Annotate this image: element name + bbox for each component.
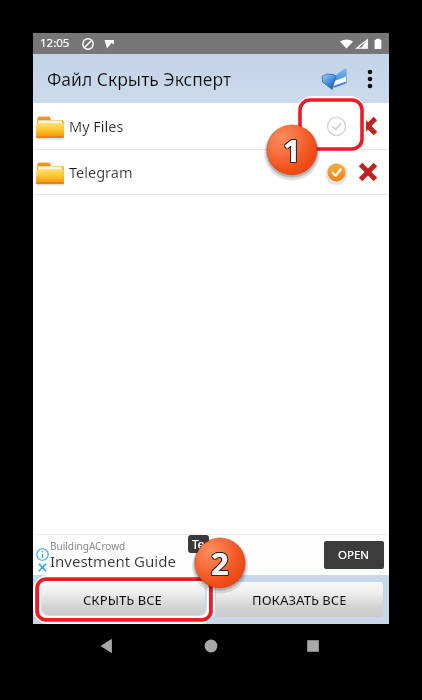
staticText: 1 [284,128,302,170]
button[interactable]: СКРЫТЬ ВСЕ [39,582,205,617]
staticText: Te [192,536,205,552]
button[interactable]: Remove [351,109,385,143]
button[interactable]: Recent apps [295,628,331,664]
staticText: 1 [282,128,300,170]
staticText: Telegram [69,162,133,182]
staticText: 2 [212,543,230,585]
button[interactable]: Shown [319,155,354,190]
staticText: Investment Guide [50,551,176,571]
button[interactable]: Hidden [319,109,354,144]
staticText: 1 [284,130,302,172]
staticText: 2 [212,541,230,583]
staticText: My Files [69,116,124,136]
button[interactable]: OPEN [324,541,384,569]
staticText: 1 [283,128,301,170]
staticText: 2 [211,541,229,583]
button[interactable]: Open folder [310,55,358,103]
button[interactable]: My Files [33,103,389,149]
button[interactable]: ПОКАЗАТЬ ВСЕ [216,582,383,617]
staticText: 2 [211,542,229,584]
button[interactable]: Home [193,628,229,664]
staticText: 12:05 [40,35,70,51]
button[interactable]: Remove [351,155,385,189]
button[interactable]: Telegram [33,150,389,194]
staticText: 2 [212,542,230,584]
button[interactable]: Back [89,628,125,664]
staticText: OPEN [338,547,370,563]
staticText: BuildingACrowd [50,539,126,553]
staticText: СКРЫТЬ ВСЕ [83,591,162,609]
staticText: 1 [282,129,300,171]
staticText: 1 [283,130,301,172]
staticText: 2 [210,541,228,583]
staticText: Файл Скрыть Эксперт [47,67,232,91]
staticText: 2 [211,543,229,585]
button[interactable]: More options [349,58,391,100]
staticText: 1 [283,129,301,171]
staticText: 1 [284,129,302,171]
staticText: ПОКАЗАТЬ ВСЕ [252,591,347,609]
staticText: 1 [282,130,300,172]
staticText: 2 [210,542,228,584]
staticText: 2 [210,543,228,585]
